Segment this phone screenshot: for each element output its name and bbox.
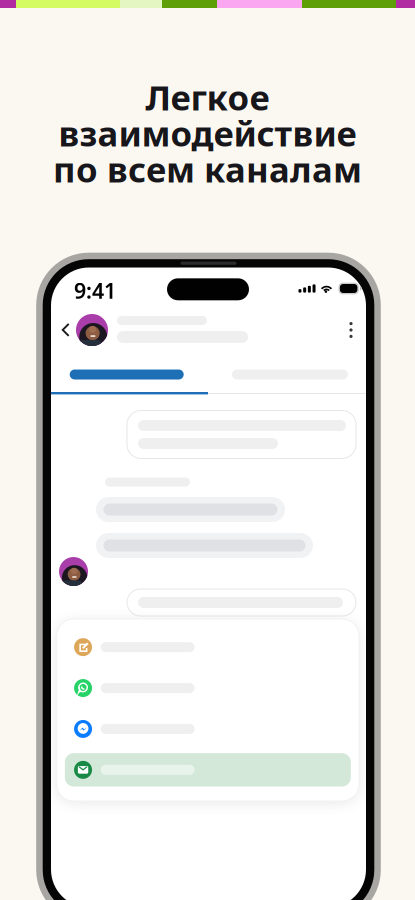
button[interactable]: Back bbox=[55, 318, 77, 342]
button[interactable]: Messenger bbox=[65, 712, 351, 746]
button[interactable]: Email bbox=[65, 753, 351, 786]
button[interactable]: Chats tab bbox=[51, 361, 227, 387]
staticText: по всем каналам bbox=[53, 146, 362, 192]
button[interactable]: Contacts tab bbox=[212, 361, 370, 387]
staticText: Легкое bbox=[145, 74, 269, 120]
staticText: 9:41 bbox=[74, 276, 116, 305]
button[interactable]: Internal note bbox=[65, 630, 351, 664]
button[interactable]: WhatsApp bbox=[65, 671, 351, 705]
staticText: взаимодействие bbox=[58, 110, 356, 156]
button[interactable]: More options bbox=[341, 318, 361, 342]
